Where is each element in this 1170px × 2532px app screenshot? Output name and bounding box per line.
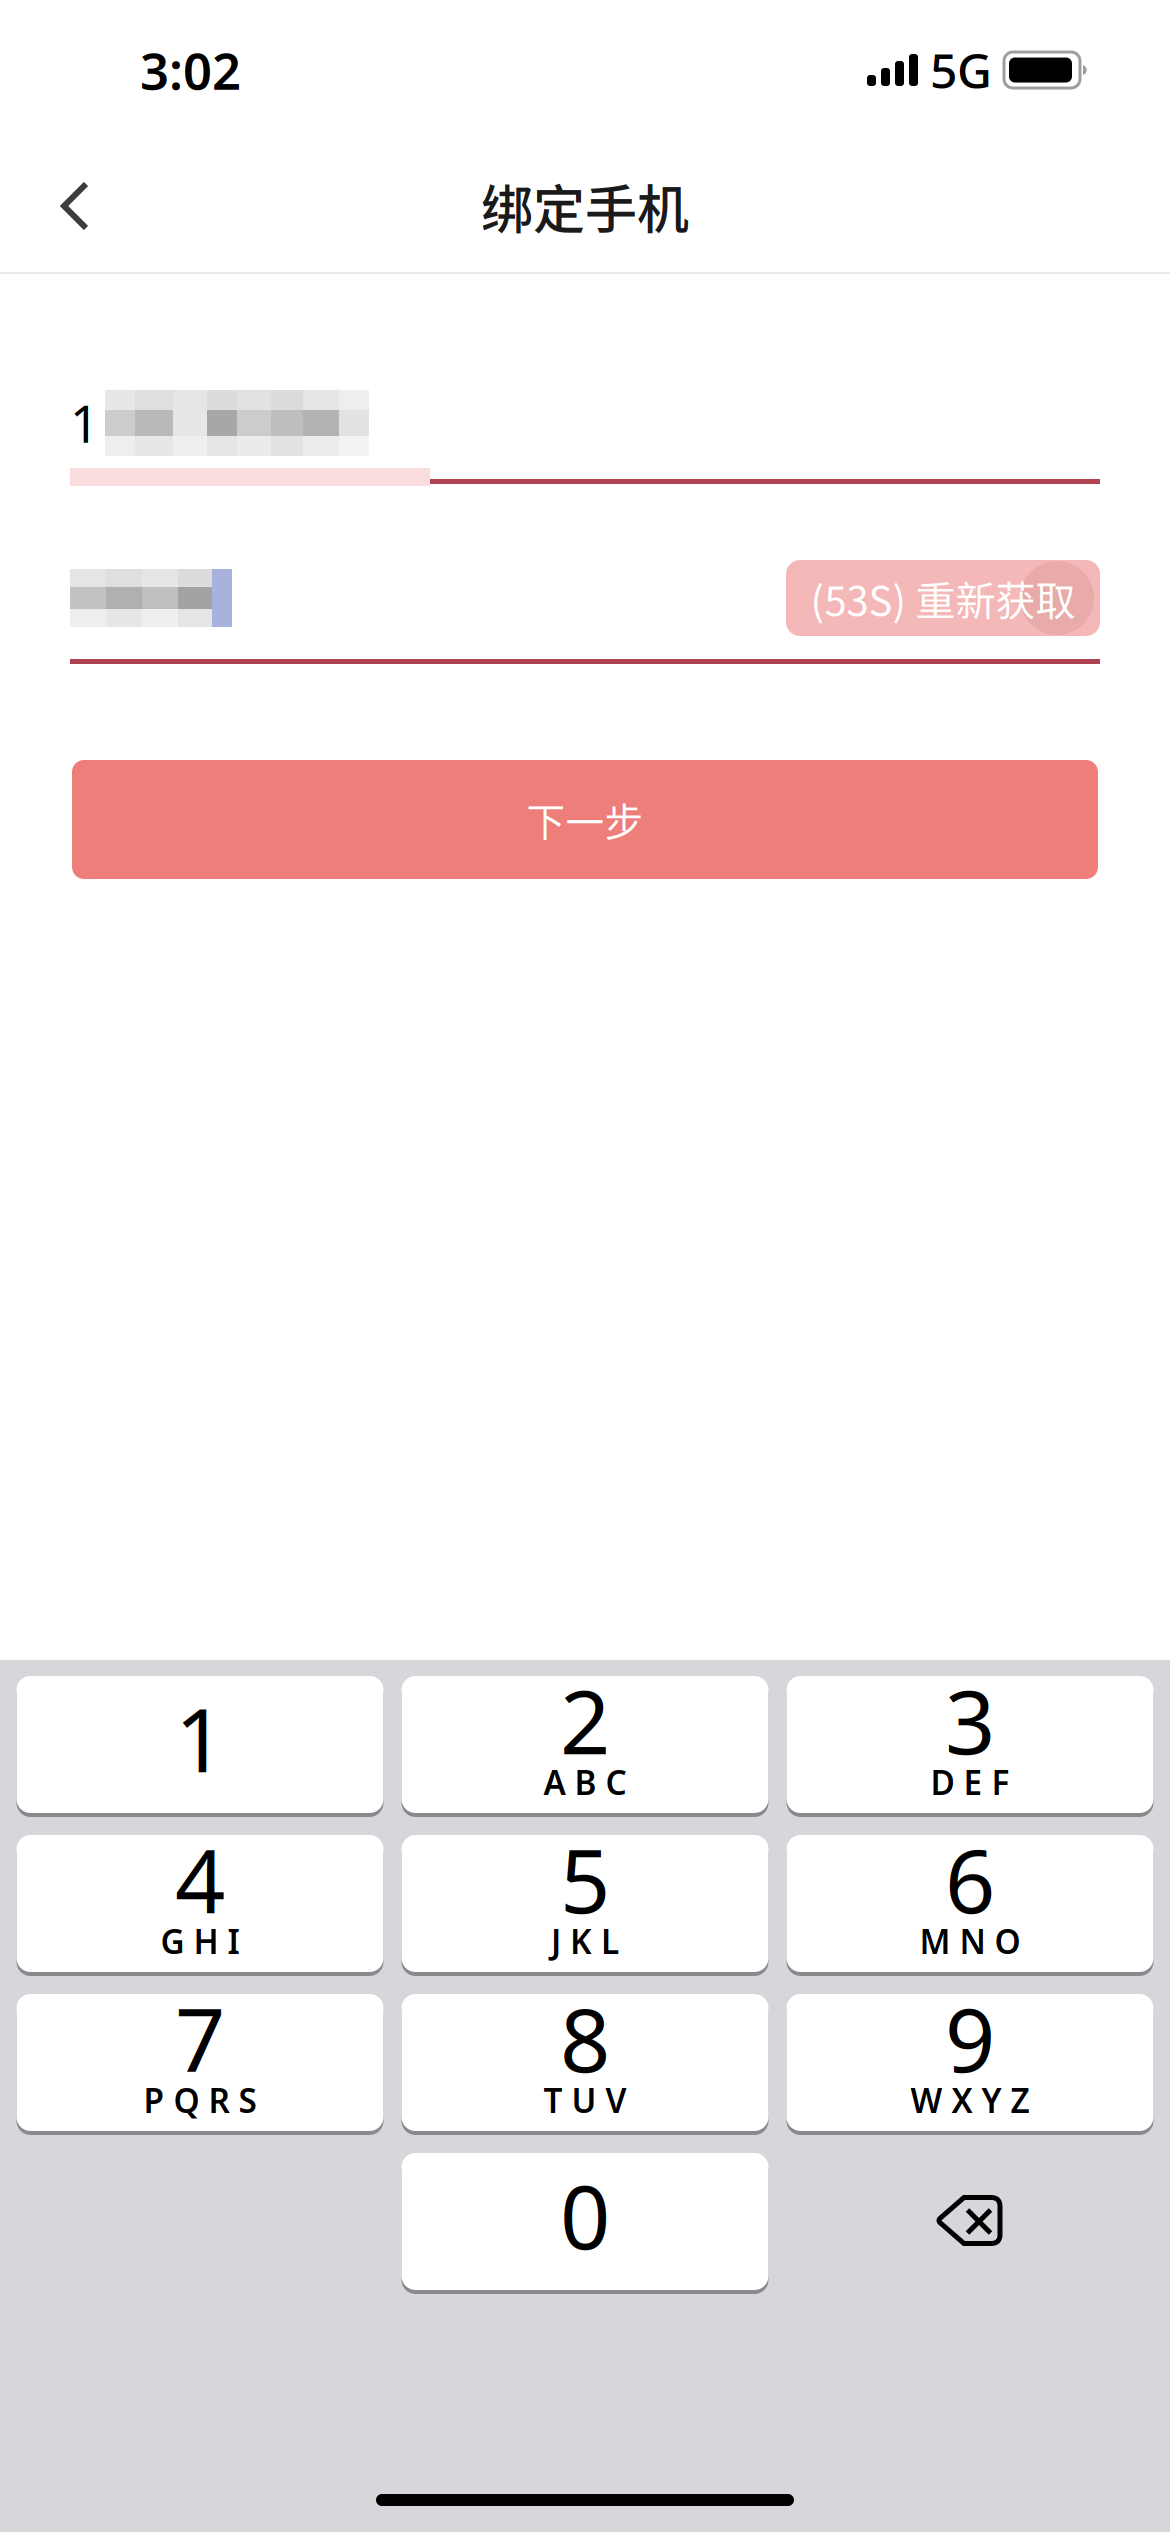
button[interactable]: Back [30, 151, 120, 261]
button[interactable]: 1 [16, 1674, 383, 1815]
staticText: 9 [945, 1980, 995, 2096]
staticText: G H I [160, 1919, 239, 1963]
staticText: D E F [930, 1760, 1009, 1804]
staticText: 0 [560, 2157, 610, 2273]
button[interactable]: Delete [786, 2151, 1153, 2292]
button[interactable]: 8 [401, 1992, 768, 2133]
staticText: 6 [945, 1821, 995, 1937]
staticText: 8 [560, 1980, 610, 2096]
staticText: J K L [551, 1919, 619, 1963]
staticText: T U V [543, 2078, 626, 2122]
staticText: 3 [945, 1662, 995, 1778]
button[interactable]: 0 [401, 2151, 768, 2292]
button[interactable]: 7 [16, 1992, 383, 2133]
button[interactable]: 4 [16, 1833, 383, 1974]
staticText: 5G [930, 38, 992, 102]
button[interactable]: 6 [786, 1833, 1153, 1974]
button[interactable]: 2 [401, 1674, 768, 1815]
button[interactable]: 3 [786, 1674, 1153, 1815]
staticText: A B C [543, 1760, 626, 1804]
button[interactable]: 下一步 [72, 760, 1098, 879]
staticText: 1 [70, 389, 99, 457]
staticText: 5 [560, 1821, 610, 1937]
staticText: 7 [175, 1980, 225, 2096]
staticText: 3:02 [140, 36, 241, 104]
staticText: 绑定手机 [481, 168, 689, 244]
staticText: P Q R S [143, 2078, 256, 2122]
staticText: 1 [175, 1680, 225, 1796]
staticText: 4 [175, 1821, 225, 1937]
button[interactable]: (53S) 重新获取 [786, 560, 1100, 636]
button[interactable]: 5 [401, 1833, 768, 1974]
staticText: 下一步 [526, 791, 643, 847]
staticText: (53S) 重新获取 [810, 569, 1075, 627]
staticText: W X Y Z [910, 2078, 1029, 2122]
staticText: M N O [919, 1919, 1020, 1963]
staticText: 2 [560, 1662, 610, 1778]
button[interactable]: 9 [786, 1992, 1153, 2133]
